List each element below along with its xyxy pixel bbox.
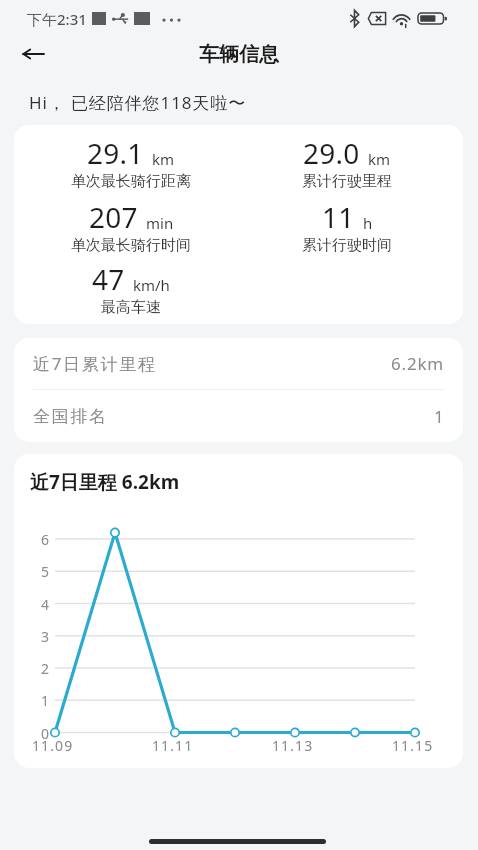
staticText: km	[152, 149, 175, 169]
staticText: 11.09	[32, 736, 74, 755]
button[interactable]: 全国排名	[14, 390, 463, 442]
staticText: 207	[89, 198, 138, 236]
staticText: 4	[41, 595, 50, 613]
staticText: 1	[434, 405, 444, 428]
staticText: 单次最长骑行距离	[71, 172, 191, 191]
staticText: 6	[41, 530, 50, 548]
staticText: 29.0	[303, 134, 360, 172]
staticText: h	[363, 213, 373, 233]
staticText: 车辆信息	[199, 42, 279, 67]
staticText: 11.11	[152, 736, 194, 755]
staticText: 47	[92, 260, 125, 298]
staticText: 单次最长骑行时间	[71, 236, 191, 255]
staticText: 11.15	[392, 736, 434, 755]
staticText: 11.13	[272, 736, 314, 755]
staticText: 3	[41, 627, 50, 645]
staticText: Hi， 已经陪伴您118天啦〜	[29, 91, 247, 114]
staticText: 11	[322, 198, 355, 236]
staticText: 1	[41, 691, 50, 709]
staticText: 累计行驶里程	[302, 172, 392, 191]
staticText: 近7日里程 6.2km	[30, 469, 180, 495]
staticText: min	[146, 213, 174, 233]
staticText: 5	[41, 562, 50, 580]
button[interactable]: Back	[11, 34, 55, 74]
staticText: 2	[41, 659, 50, 677]
button[interactable]: 近7日累计里程	[14, 338, 463, 389]
staticText: 0	[41, 724, 50, 742]
staticText: 6.2km	[391, 352, 444, 375]
staticText: km/h	[133, 275, 170, 295]
staticText: 29.1	[87, 134, 144, 172]
staticText: 下午2:31	[27, 9, 87, 29]
staticText: 最高车速	[101, 298, 161, 317]
staticText: 全国排名	[33, 406, 108, 427]
staticText: 累计行驶时间	[302, 236, 392, 255]
staticText: km	[368, 149, 391, 169]
staticText: 近7日累计里程	[33, 352, 157, 375]
